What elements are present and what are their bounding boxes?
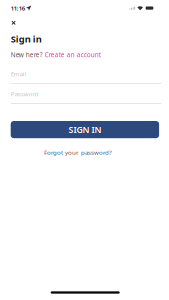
staticText: New here? bbox=[11, 51, 43, 59]
staticText: Email bbox=[11, 70, 27, 78]
staticText: Forgot your password? bbox=[44, 148, 112, 157]
staticText: 11:16 bbox=[11, 4, 25, 12]
button[interactable]: Forgot your password? bbox=[33, 148, 123, 156]
button[interactable]: Close bbox=[6, 17, 22, 29]
button[interactable]: SIGN IN bbox=[11, 121, 159, 138]
staticText: Sign in bbox=[11, 32, 42, 45]
button[interactable]: Create an account bbox=[43, 51, 101, 59]
staticText: Password bbox=[11, 90, 39, 98]
staticText: Create an account bbox=[45, 51, 101, 59]
staticText: SIGN IN bbox=[68, 124, 101, 136]
